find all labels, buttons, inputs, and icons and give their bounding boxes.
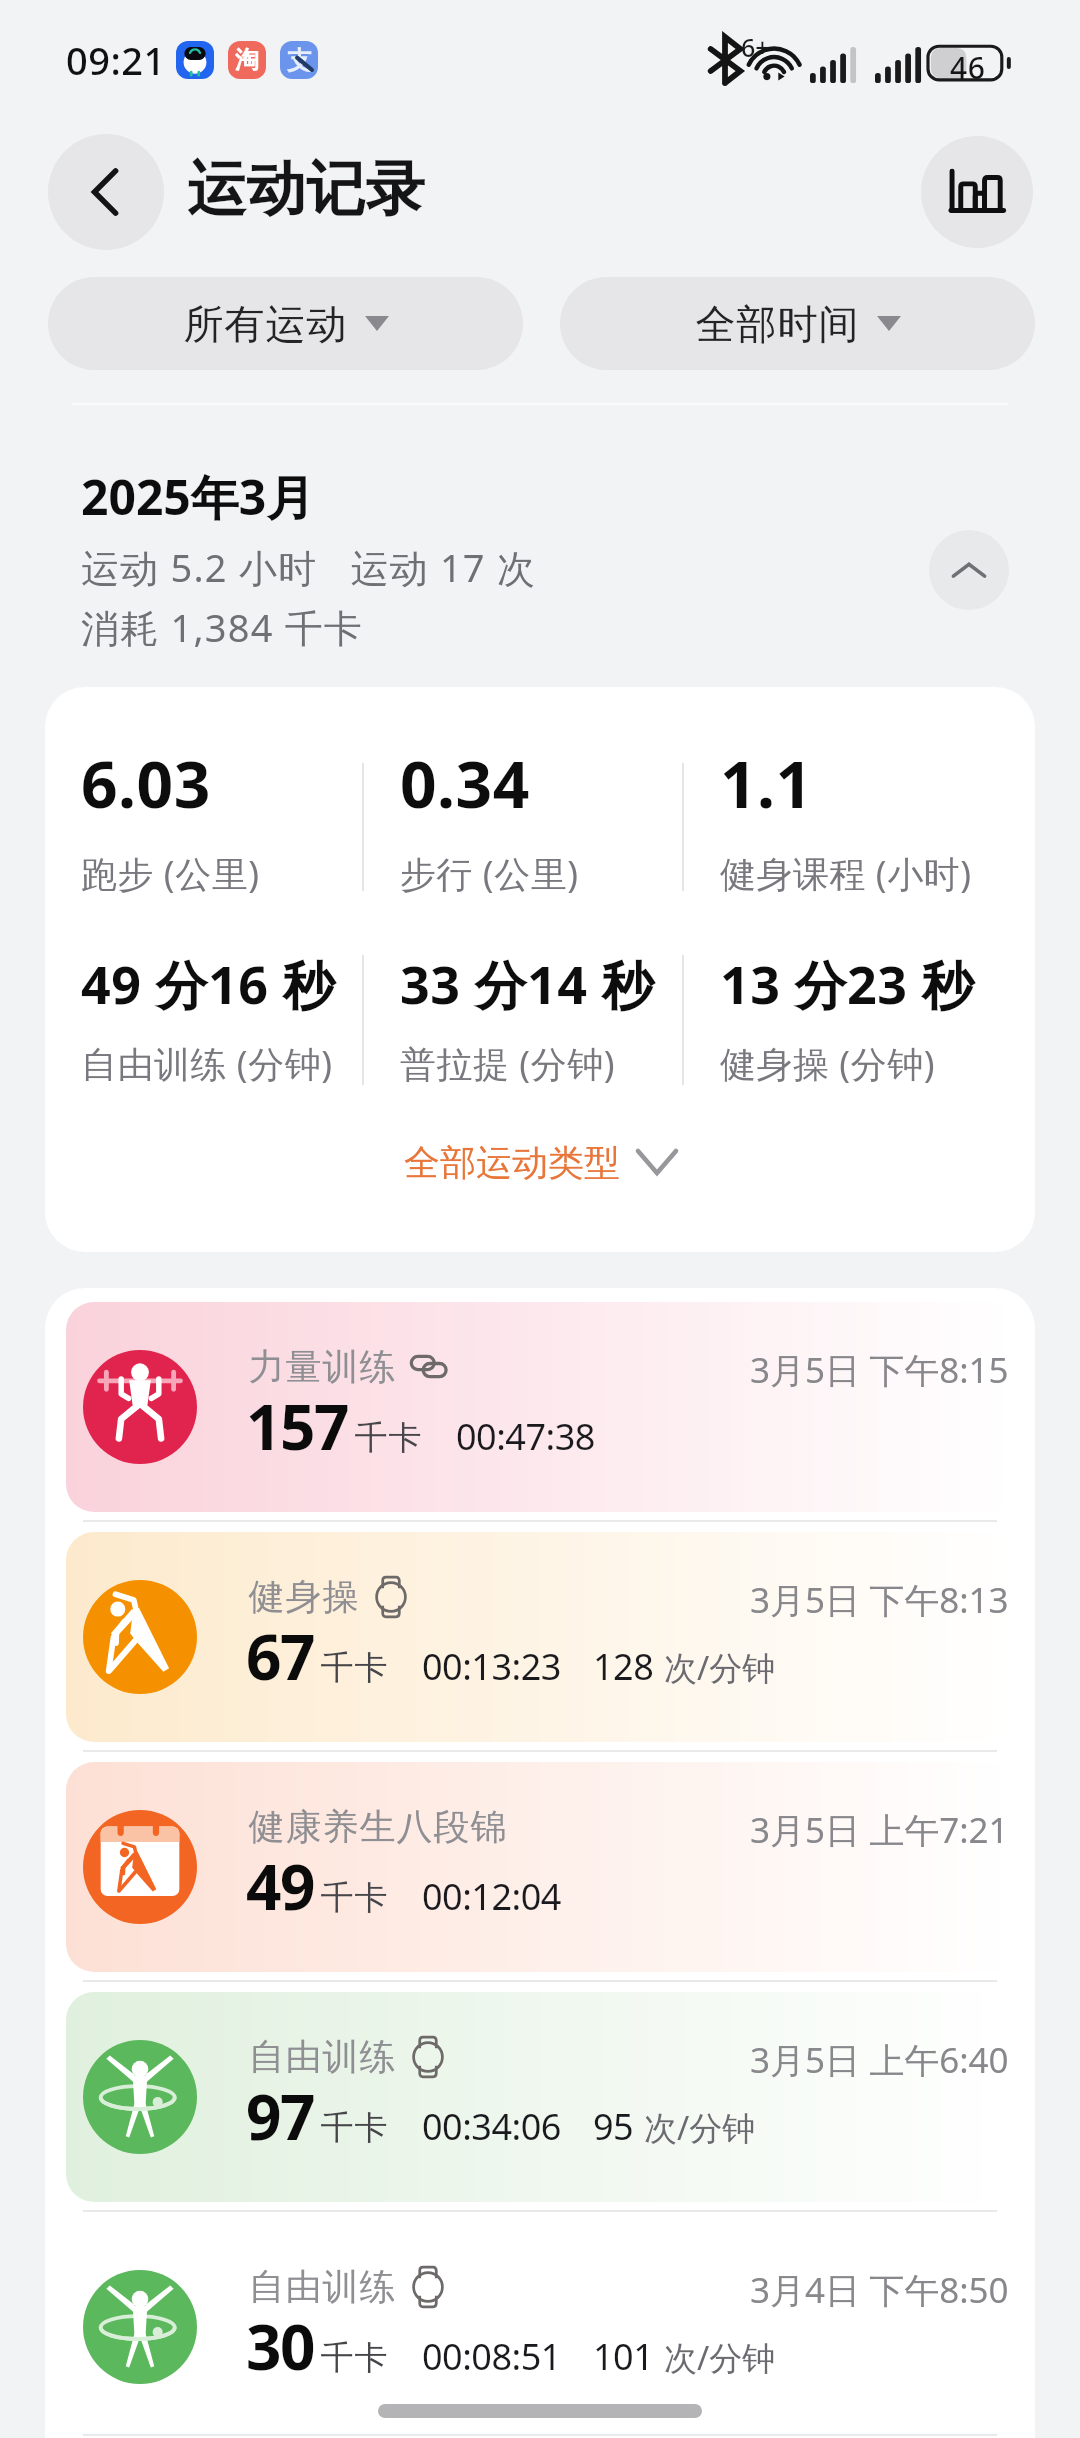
staticText: 千卡 (320, 1647, 388, 1689)
staticText: 13 分23 秒 (720, 948, 975, 1019)
button[interactable]: 所有运动 (48, 277, 523, 370)
staticText: 3月5日 上午7:21 (750, 1806, 1009, 1854)
staticText: 95 (593, 2102, 634, 2151)
staticText: 00:34:06 (422, 2102, 561, 2151)
staticText: 00:12:04 (422, 1872, 561, 1921)
staticText: 支 (287, 45, 312, 76)
staticText: 淘 (235, 45, 259, 75)
staticText: 自由训练 (分钟) (81, 1039, 333, 1088)
staticText: 1.1 (720, 740, 813, 827)
button[interactable]: Collapse (929, 530, 1009, 610)
staticText: 30 (246, 2304, 314, 2388)
staticText: 步行 (公里) (400, 849, 579, 898)
staticText: 3月5日 下午8:13 (750, 1576, 1009, 1624)
staticText: 千卡 (320, 1877, 388, 1919)
button[interactable]: Statistics (921, 136, 1033, 248)
button[interactable]: 健身操 (66, 1532, 1014, 1742)
staticText: 次/分钟 (664, 2335, 776, 2380)
staticText: 力量训练 (248, 1344, 396, 1389)
staticText: 09:21 (66, 34, 166, 86)
staticText: 6.03 (81, 740, 211, 827)
staticText: 97 (246, 2074, 314, 2158)
staticText: 全部运动类型 (404, 1140, 620, 1185)
staticText: 健康养生八段锦 (248, 1804, 507, 1849)
staticText: 普拉提 (分钟) (400, 1039, 615, 1088)
staticText: 次/分钟 (644, 2105, 756, 2150)
staticText: 运动 5.2 小时 运动 17 次 (81, 541, 537, 593)
staticText: 自由训练 (248, 2264, 396, 2309)
staticText: 全部时间 (695, 299, 859, 349)
button[interactable]: 全部时间 (560, 277, 1035, 370)
staticText: 3月4日 下午8:50 (750, 2266, 1009, 2314)
staticText: 消耗 1,384 千卡 (81, 601, 364, 653)
staticText: 00:08:51 (422, 2332, 561, 2381)
staticText: 3月5日 下午8:15 (750, 1346, 1009, 1394)
staticText: 自由训练 (248, 2034, 396, 2079)
staticText: 157 (246, 1384, 348, 1468)
staticText: 49 分16 秒 (81, 948, 336, 1019)
staticText: 3月5日 上午6:40 (750, 2036, 1009, 2084)
button[interactable]: 自由训练 (66, 1992, 1014, 2202)
staticText: 33 分14 秒 (400, 948, 655, 1019)
staticText: 00:47:38 (456, 1412, 595, 1461)
staticText: 6+ (741, 30, 770, 64)
staticText: 健身课程 (小时) (720, 849, 972, 898)
staticText: 00:13:23 (422, 1642, 561, 1691)
staticText: 运动记录 (187, 152, 425, 226)
button[interactable]: Back (48, 134, 164, 250)
staticText: 千卡 (320, 2337, 388, 2379)
staticText: 千卡 (320, 2107, 388, 2149)
staticText: 101 (593, 2332, 654, 2381)
staticText: 2025年3月 (81, 464, 315, 530)
button[interactable]: 健康养生八段锦 (66, 1762, 1014, 1972)
staticText: 0.34 (400, 740, 530, 827)
staticText: 49 (246, 1844, 314, 1928)
staticText: 128 (593, 1642, 654, 1691)
staticText: 健身操 (分钟) (720, 1039, 935, 1088)
staticText: 千卡 (354, 1417, 422, 1459)
button[interactable]: 自由训练 (66, 2222, 1014, 2432)
button[interactable]: 全部运动类型 (45, 1117, 1035, 1207)
staticText: 跑步 (公里) (81, 849, 260, 898)
staticText: 46 (950, 47, 986, 88)
staticText: 所有运动 (183, 299, 347, 349)
staticText: 健身操 (248, 1574, 359, 1619)
staticText: 次/分钟 (664, 1645, 776, 1690)
button[interactable]: 力量训练 (66, 1302, 1014, 1512)
staticText: 67 (246, 1614, 314, 1698)
